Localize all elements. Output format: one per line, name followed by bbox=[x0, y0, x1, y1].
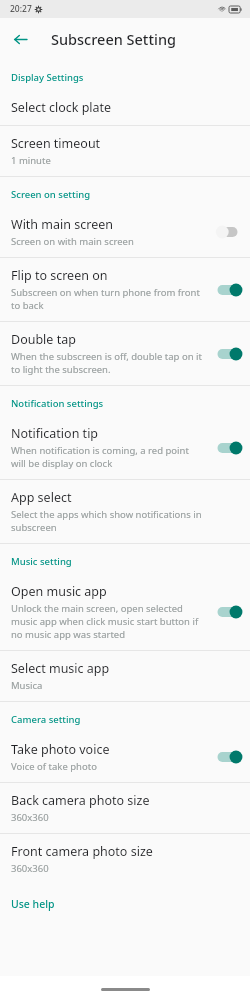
button[interactable]: Front camera photo size bbox=[0, 834, 250, 884]
staticText: Select music app bbox=[11, 660, 110, 677]
button[interactable]: Use help bbox=[0, 884, 250, 924]
staticText: 1 minute bbox=[11, 154, 51, 167]
staticText: Back camera photo size bbox=[11, 792, 150, 809]
staticText: Unlock the main screen, open selected mu… bbox=[11, 602, 199, 641]
staticText: App select bbox=[11, 489, 72, 506]
button[interactable]: With main screen bbox=[0, 207, 250, 257]
staticText: Take photo voice bbox=[11, 741, 110, 758]
staticText: Camera setting bbox=[11, 713, 81, 726]
staticText: Musica bbox=[11, 679, 43, 692]
staticText: Subscreen on when turn phone from front … bbox=[11, 286, 200, 312]
staticText: Screen on setting bbox=[11, 188, 91, 201]
staticText: 20:27 bbox=[10, 3, 32, 15]
staticText: Screen timeout bbox=[11, 135, 101, 152]
staticText: Select clock plate bbox=[11, 99, 112, 116]
staticText: When notification is coming, a red point… bbox=[11, 444, 189, 470]
button[interactable]: Take photo voice bbox=[0, 732, 250, 782]
button[interactable]: Notification tip bbox=[0, 416, 250, 479]
staticText: Open music app bbox=[11, 583, 107, 600]
staticText: Display Settings bbox=[11, 71, 84, 84]
button[interactable]: Flip to screen on bbox=[0, 258, 250, 321]
staticText: Screen on with main screen bbox=[11, 235, 134, 248]
staticText: Subscreen Setting bbox=[51, 29, 176, 49]
staticText: Select the apps which show notifications… bbox=[11, 508, 202, 534]
button[interactable]: Back bbox=[6, 25, 34, 53]
button[interactable]: Back camera photo size bbox=[0, 783, 250, 833]
button[interactable]: Select clock plate bbox=[0, 90, 250, 125]
button[interactable]: Double tap bbox=[0, 322, 250, 385]
staticText: When the subscreen is off, double tap on… bbox=[11, 350, 202, 376]
button[interactable]: App select bbox=[0, 480, 250, 543]
staticText: Notification settings bbox=[11, 397, 104, 410]
staticText: Flip to screen on bbox=[11, 267, 108, 284]
staticText: Notification tip bbox=[11, 425, 99, 442]
staticText: With main screen bbox=[11, 216, 113, 233]
staticText: Double tap bbox=[11, 331, 76, 348]
staticText: Front camera photo size bbox=[11, 843, 153, 860]
button[interactable]: Open music app bbox=[0, 574, 250, 650]
staticText: 360x360 bbox=[11, 811, 49, 824]
button[interactable]: Select music app bbox=[0, 651, 250, 701]
staticText: Voice of take photo bbox=[11, 760, 97, 773]
staticText: 360x360 bbox=[11, 862, 49, 875]
button[interactable]: Screen timeout bbox=[0, 126, 250, 176]
staticText: Use help bbox=[11, 897, 55, 911]
staticText: Music setting bbox=[11, 555, 72, 568]
